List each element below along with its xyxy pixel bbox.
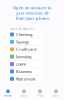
button[interactable]: Retirement [8,75,43,82]
staticText: Home [4,94,12,97]
staticText: Open an account [10,27,33,31]
button[interactable]: Business [8,68,43,75]
staticText: Checking [16,32,32,37]
staticText: Plan [37,94,43,97]
button[interactable]: Investing [8,53,43,60]
staticText: Savings [16,39,29,44]
staticText: More [52,94,59,97]
staticText: Move [20,94,27,97]
button[interactable]: Loans [8,60,43,67]
button[interactable]: Move [16,90,32,97]
staticText: Business [16,69,32,74]
button[interactable]: Credit card [8,46,43,53]
staticText: Open an account in just minutes, all fro… [12,5,51,21]
button[interactable]: Home [0,90,16,97]
staticText: Retirement [16,76,35,81]
button[interactable]: More [48,90,64,97]
button[interactable]: Checking [8,31,43,38]
staticText: Loans [16,61,26,67]
button[interactable]: Savings [8,38,43,45]
button[interactable]: Plan [32,90,48,97]
staticText: Credit card [16,47,36,52]
staticText: Investing [16,54,31,59]
